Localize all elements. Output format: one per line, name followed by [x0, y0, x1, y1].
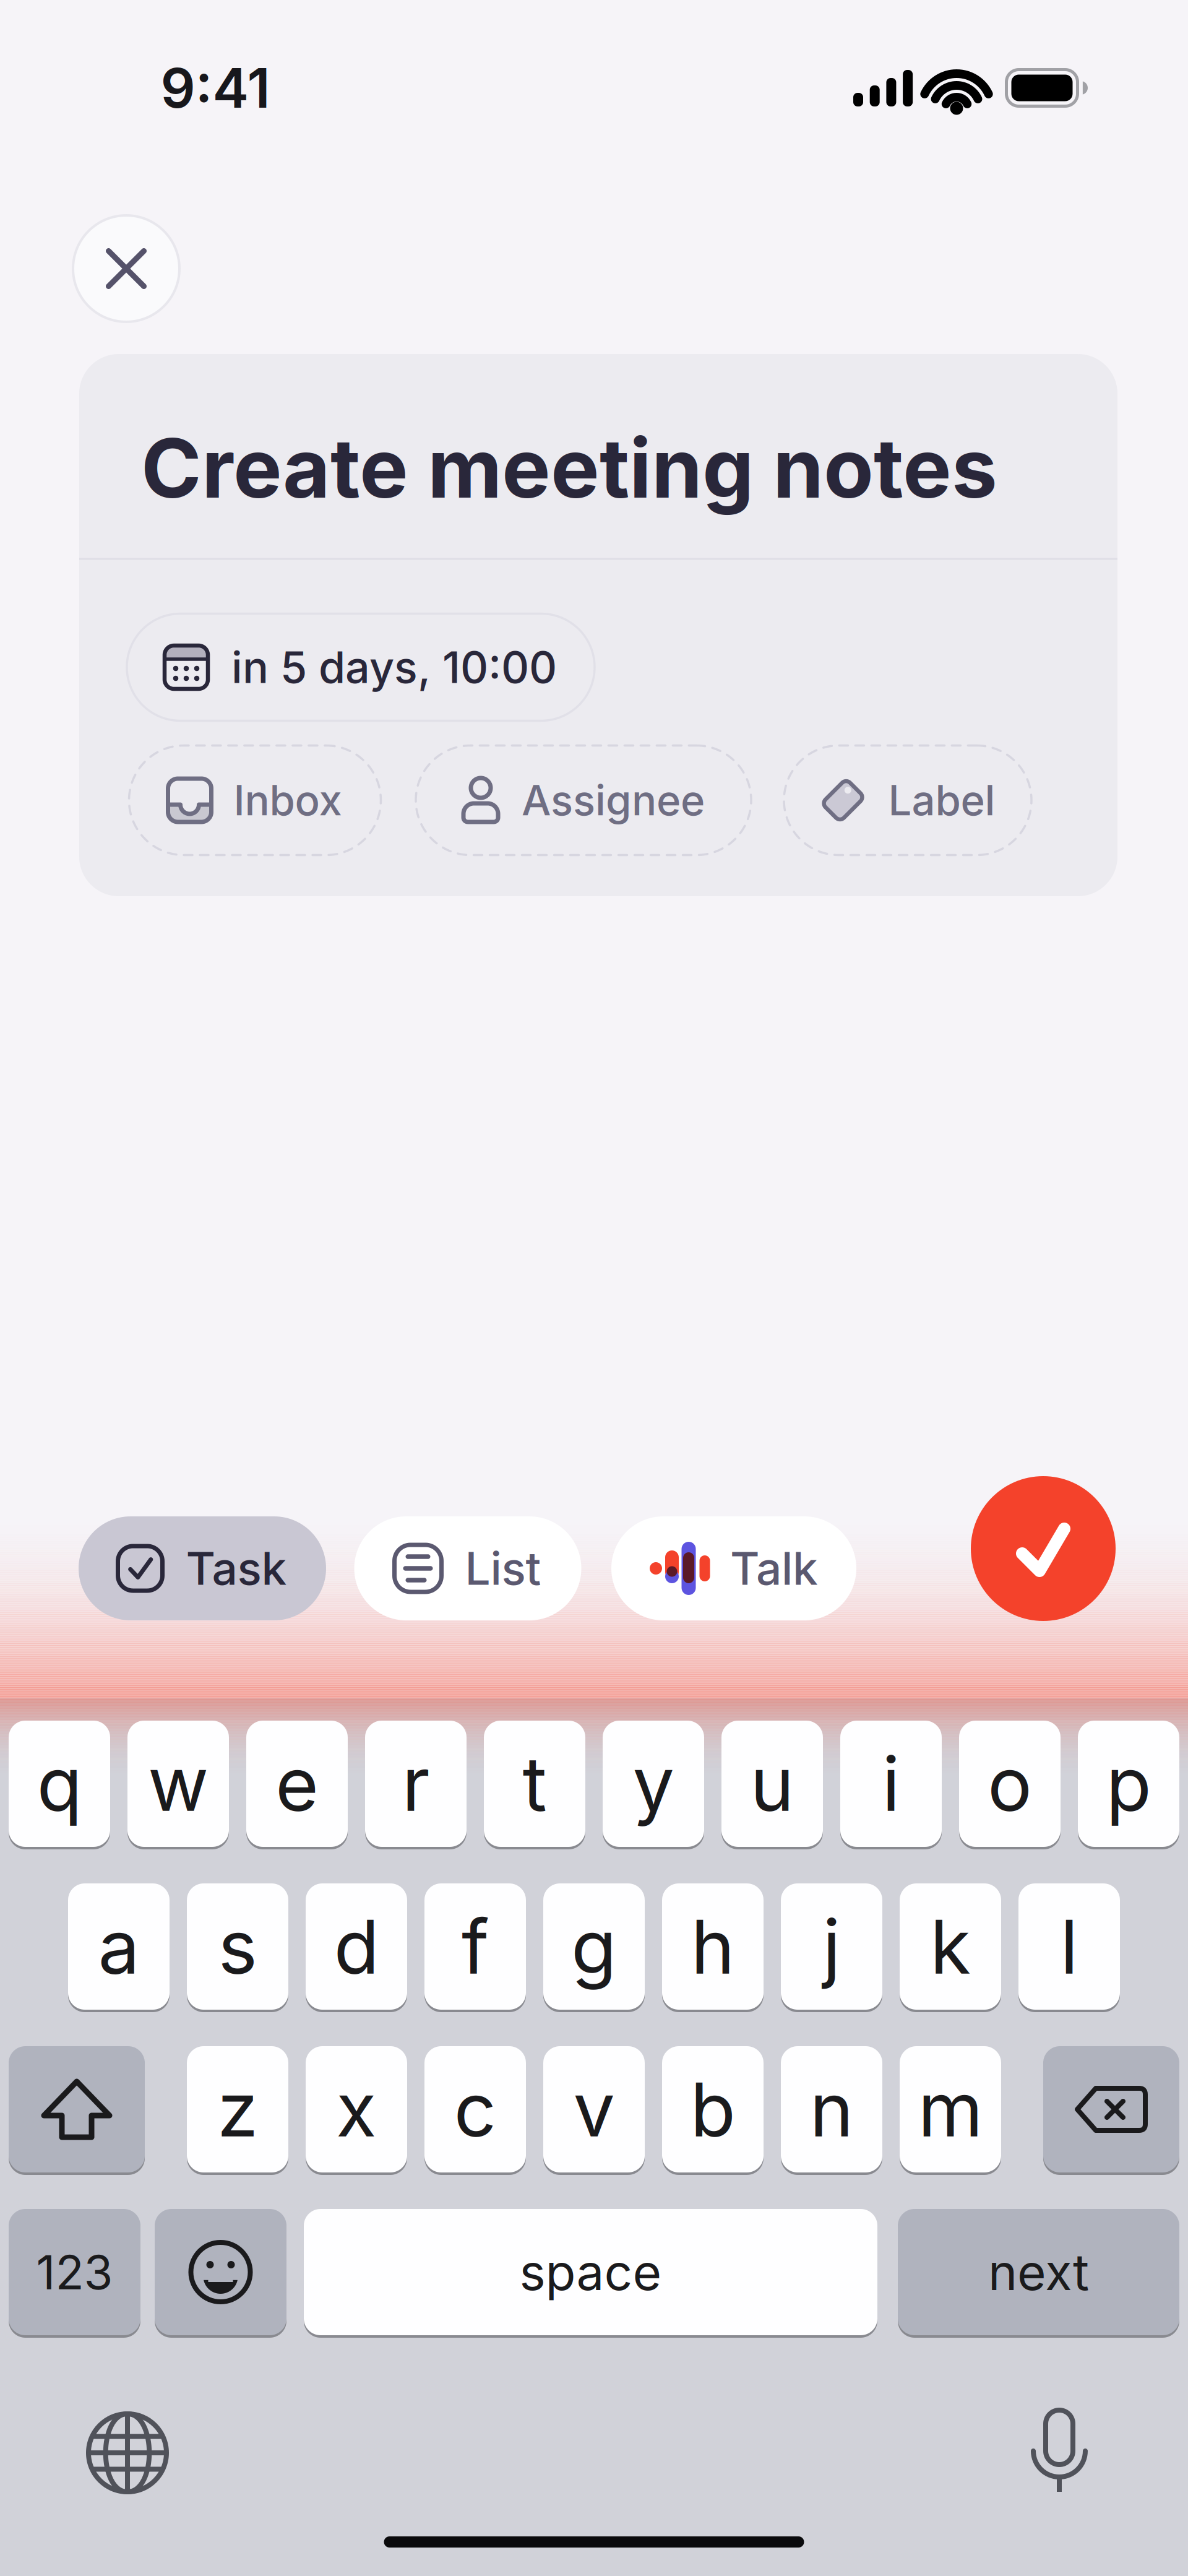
button[interactable]: s: [187, 1883, 288, 2010]
button[interactable]: Label: [784, 746, 1031, 855]
button[interactable]: i: [840, 1721, 942, 1847]
staticText: z: [217, 2066, 258, 2153]
staticText: Assignee: [522, 776, 705, 825]
button[interactable]: j: [781, 1883, 882, 2010]
staticText: y: [633, 1740, 674, 1828]
staticText: o: [988, 1740, 1032, 1828]
staticText: Create meeting notes: [141, 420, 997, 516]
button[interactable]: f: [424, 1883, 526, 2010]
button[interactable]: Talk: [611, 1516, 856, 1620]
button[interactable]: List: [354, 1516, 581, 1620]
button[interactable]: v: [543, 2046, 645, 2172]
button[interactable]: b: [662, 2046, 764, 2172]
staticText: k: [930, 1903, 971, 1990]
staticText: c: [454, 2066, 497, 2153]
staticText: f: [462, 1903, 489, 1990]
staticText: n: [810, 2066, 854, 2153]
staticText: r: [402, 1740, 430, 1828]
staticText: Talk: [730, 1542, 818, 1595]
staticText: Label: [888, 776, 995, 825]
staticText: t: [523, 1740, 547, 1828]
staticText: l: [1060, 1903, 1078, 1990]
staticText: s: [218, 1903, 257, 1990]
button[interactable]: e: [246, 1721, 348, 1847]
button[interactable]: m: [900, 2046, 1001, 2172]
staticText: Inbox: [234, 776, 342, 825]
button[interactable]: l: [1018, 1883, 1120, 2010]
staticText: q: [37, 1740, 82, 1828]
button[interactable]: g: [543, 1883, 645, 2010]
staticText: h: [691, 1903, 735, 1990]
button[interactable]: d: [306, 1883, 407, 2010]
staticText: in 5 days, 10:00: [231, 642, 557, 693]
staticText: List: [465, 1542, 541, 1595]
staticText: b: [690, 2066, 735, 2153]
button[interactable]: r: [365, 1721, 467, 1847]
button[interactable]: x: [306, 2046, 407, 2172]
button[interactable]: next: [898, 2209, 1179, 2335]
staticText: i: [882, 1740, 900, 1828]
staticText: p: [1106, 1740, 1151, 1828]
button[interactable]: space: [304, 2209, 877, 2335]
staticText: 9:41: [161, 56, 270, 120]
button[interactable]: n: [781, 2046, 882, 2172]
button[interactable]: a: [68, 1883, 170, 2010]
staticText: Task: [186, 1542, 287, 1595]
staticText: a: [98, 1903, 140, 1990]
button[interactable]: t: [484, 1721, 585, 1847]
button[interactable]: o: [959, 1721, 1061, 1847]
staticText: 123: [36, 2244, 113, 2300]
staticText: v: [573, 2066, 615, 2153]
staticText: m: [918, 2066, 983, 2153]
staticText: x: [336, 2066, 377, 2153]
button[interactable]: in 5 days, 10:00: [127, 614, 595, 721]
button[interactable]: p: [1078, 1721, 1179, 1847]
button[interactable]: z: [187, 2046, 288, 2172]
staticText: j: [823, 1903, 841, 1990]
button[interactable]: Close: [73, 215, 179, 322]
staticText: e: [275, 1740, 319, 1828]
button[interactable]: w: [127, 1721, 229, 1847]
button[interactable]: h: [662, 1883, 764, 2010]
staticText: d: [334, 1903, 379, 1990]
staticText: g: [571, 1903, 617, 1990]
staticText: next: [988, 2243, 1089, 2301]
staticText: u: [750, 1740, 794, 1828]
button[interactable]: Shift: [9, 2046, 145, 2172]
button[interactable]: Emoji: [155, 2209, 286, 2335]
staticText: space: [519, 2243, 662, 2301]
staticText: w: [148, 1740, 209, 1828]
button[interactable]: Delete: [1043, 2046, 1179, 2172]
button[interactable]: c: [424, 2046, 526, 2172]
button[interactable]: Dictate: [1028, 2397, 1090, 2496]
button[interactable]: Assignee: [416, 746, 751, 855]
button[interactable]: Save: [971, 1476, 1116, 1621]
button[interactable]: Next keyboard: [86, 2411, 169, 2494]
button[interactable]: 123: [9, 2209, 140, 2335]
button[interactable]: u: [721, 1721, 823, 1847]
button[interactable]: Task: [79, 1516, 326, 1620]
button[interactable]: y: [603, 1721, 704, 1847]
button[interactable]: q: [9, 1721, 110, 1847]
button[interactable]: k: [900, 1883, 1001, 2010]
button[interactable]: Inbox: [129, 746, 381, 855]
